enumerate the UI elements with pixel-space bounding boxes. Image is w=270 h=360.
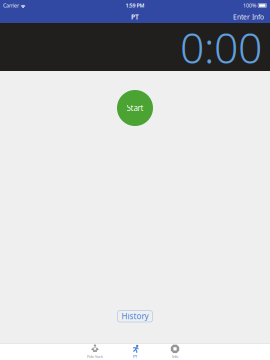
- button[interactable]: PT: [115, 344, 155, 360]
- staticText: Enter Info: [233, 13, 264, 21]
- staticText: 1:59 PM: [125, 2, 144, 9]
- staticText: Pole Sock: [87, 354, 103, 359]
- button[interactable]: Start: [117, 90, 153, 126]
- staticText: Start: [126, 103, 143, 113]
- button[interactable]: History: [117, 310, 152, 322]
- staticText: 0:00: [180, 19, 262, 75]
- staticText: 100%: [243, 2, 256, 9]
- staticText: Carrier: [3, 2, 19, 9]
- button[interactable]: Enter Info: [229, 11, 270, 23]
- button[interactable]: Info: [155, 344, 195, 360]
- staticText: PT: [133, 354, 137, 359]
- button[interactable]: Pole Sock: [75, 344, 115, 360]
- staticText: PT: [131, 13, 139, 21]
- staticText: History: [121, 311, 148, 321]
- staticText: Info: [172, 354, 178, 359]
